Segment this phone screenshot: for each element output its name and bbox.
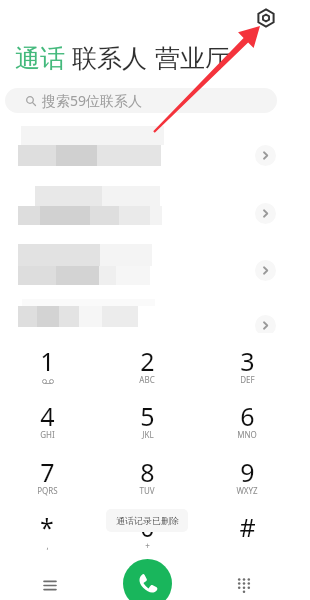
staticText: + xyxy=(145,540,150,551)
button[interactable]: 6 xyxy=(211,399,283,449)
button[interactable]: 联系人 xyxy=(72,43,147,74)
staticText: 1 xyxy=(40,344,55,378)
button[interactable]: Settings xyxy=(251,3,280,32)
button[interactable]: Details xyxy=(255,203,276,224)
staticText: 7 xyxy=(40,455,55,489)
staticText: 搜索59位联系人 xyxy=(42,91,143,110)
staticText: ABC xyxy=(139,374,155,385)
button[interactable]: Details xyxy=(255,260,276,281)
button[interactable]: Details xyxy=(0,126,310,165)
staticText: 0 xyxy=(140,510,155,544)
staticText: MNO xyxy=(237,429,257,440)
button[interactable]: 7 xyxy=(11,455,83,505)
staticText: 通话记录已删除 xyxy=(116,515,179,526)
staticText: 3 xyxy=(240,344,255,378)
button[interactable]: Details xyxy=(0,186,310,225)
button[interactable]: 1 xyxy=(11,344,83,394)
button[interactable]: # xyxy=(211,510,283,560)
button[interactable]: Details xyxy=(0,244,310,285)
staticText: 9 xyxy=(240,455,255,489)
button[interactable]: 8 xyxy=(111,455,183,505)
button[interactable]: Details xyxy=(255,315,276,336)
staticText: 通话 xyxy=(15,43,65,74)
button[interactable]: Details xyxy=(255,145,276,166)
button[interactable]: * xyxy=(11,510,83,560)
button[interactable]: 9 xyxy=(211,455,283,505)
staticText: 2 xyxy=(140,344,155,378)
button[interactable]: Details xyxy=(0,299,310,326)
staticText: # xyxy=(239,510,256,544)
staticText: 8 xyxy=(140,455,155,489)
staticText: JKL xyxy=(142,429,154,440)
staticText: 4 xyxy=(40,399,55,433)
staticText: , xyxy=(46,540,49,551)
button[interactable]: Keypad xyxy=(227,568,261,600)
button[interactable]: 通话 xyxy=(15,43,65,74)
staticText: 联系人 xyxy=(72,43,147,74)
button[interactable]: Menu xyxy=(33,568,67,600)
staticText: PQRS xyxy=(37,485,58,496)
button[interactable]: 5 xyxy=(111,399,183,449)
button[interactable]: 0 xyxy=(111,510,183,560)
staticText: 5 xyxy=(140,399,155,433)
button[interactable]: 2 xyxy=(111,344,183,394)
staticText: GHI xyxy=(40,429,55,440)
button[interactable]: 搜索59位联系人 xyxy=(5,88,277,113)
staticText: TUV xyxy=(139,485,155,496)
staticText: 营业厅 xyxy=(155,43,230,74)
staticText: * xyxy=(40,510,54,544)
staticText: 6 xyxy=(240,399,255,433)
staticText: DEF xyxy=(240,374,255,385)
button[interactable]: Call xyxy=(123,559,172,600)
staticText: WXYZ xyxy=(236,485,258,496)
button[interactable]: 营业厅 xyxy=(155,43,230,74)
button[interactable]: 3 xyxy=(211,344,283,394)
button[interactable]: 4 xyxy=(11,399,83,449)
